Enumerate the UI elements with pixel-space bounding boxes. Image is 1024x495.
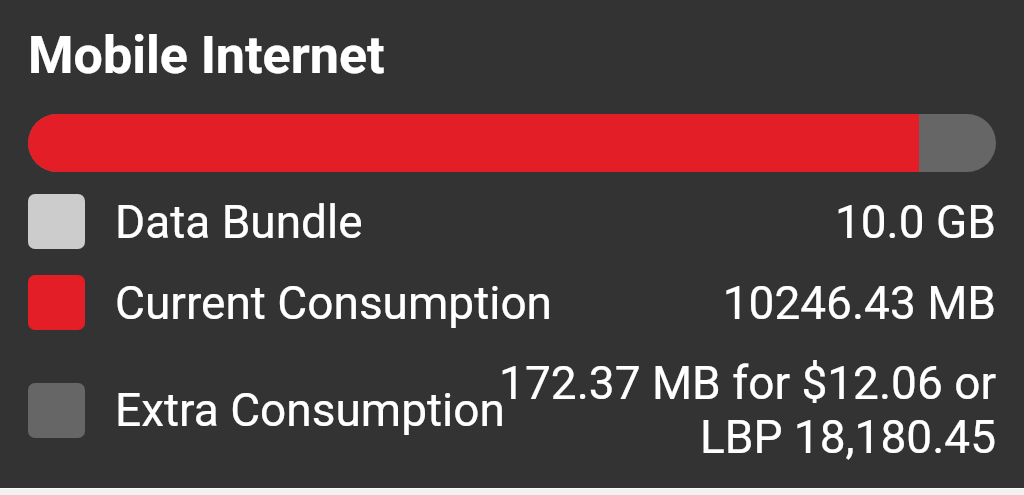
button[interactable]: Mobile internet usage, 92 percent used: [28, 114, 996, 172]
button[interactable]: Extra Consumption: [0, 355, 1024, 465]
staticText: Current Consumption: [115, 276, 553, 330]
staticText: 172.37 MB for $12.06 or LBP 18,180.45: [0, 356, 996, 464]
staticText: Data Bundle: [115, 195, 363, 249]
button[interactable]: Data Bundle: [0, 193, 1024, 250]
button[interactable]: Current Consumption: [0, 274, 1024, 331]
staticText: Mobile Internet: [28, 25, 385, 86]
staticText: 10246.43 MB: [722, 276, 996, 330]
staticText: 10.0 GB: [834, 195, 996, 249]
staticText: Extra Consumption: [115, 383, 505, 437]
